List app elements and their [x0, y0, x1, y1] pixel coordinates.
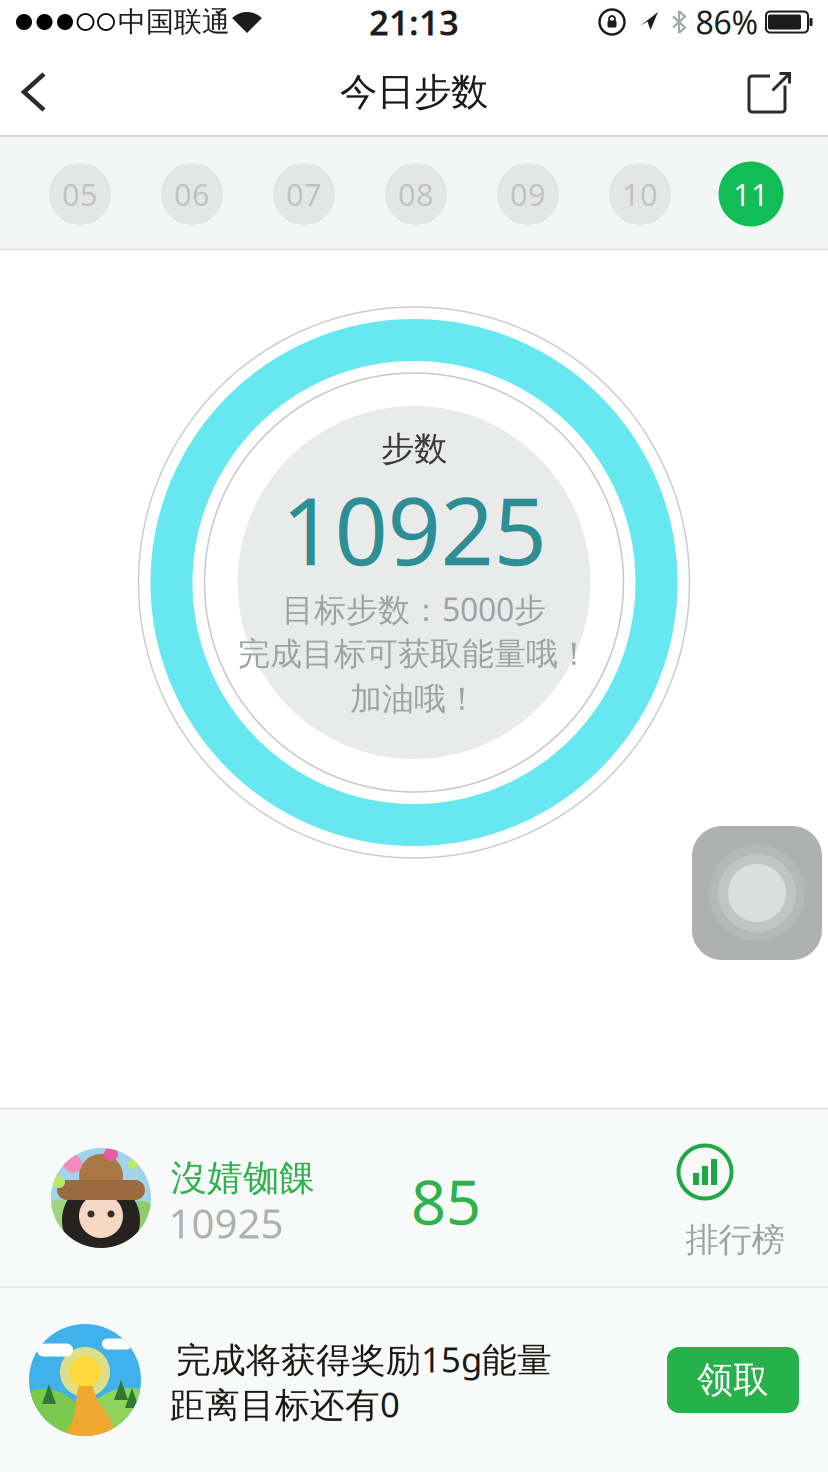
staticText: 步数: [381, 428, 447, 469]
staticText: 中国联通: [118, 5, 230, 39]
staticText: 排行榜: [685, 1219, 784, 1260]
staticText: 沒婧铷餜: [171, 1156, 315, 1200]
staticText: 06: [174, 174, 210, 214]
staticText: 09: [510, 174, 546, 214]
staticText: 距离目标还有0: [170, 1381, 400, 1427]
button[interactable]: Back: [20, 70, 64, 114]
button[interactable]: 09: [497, 163, 559, 225]
button[interactable]: 06: [161, 163, 223, 225]
staticText: 加油哦！: [350, 679, 478, 719]
button[interactable]: 领取: [667, 1347, 799, 1413]
staticText: 05: [62, 174, 98, 214]
staticText: 85: [411, 1160, 481, 1242]
staticText: 目标步数：5000步: [282, 588, 546, 630]
button[interactable]: 10: [609, 163, 671, 225]
staticText: 10: [622, 174, 658, 214]
button[interactable]: 08: [385, 163, 447, 225]
button[interactable]: 11: [718, 161, 783, 226]
button[interactable]: 05: [49, 163, 111, 225]
staticText: 10925: [281, 467, 546, 591]
staticText: 11: [733, 174, 769, 214]
button[interactable]: Share: [745, 68, 793, 116]
staticText: 21:13: [369, 0, 459, 45]
staticText: 08: [398, 174, 434, 214]
button[interactable]: 排行榜: [647, 1128, 797, 1268]
button[interactable]: 07: [273, 163, 335, 225]
staticText: 10925: [168, 1196, 283, 1249]
staticText: 完成将获得奖励15g能量: [176, 1336, 552, 1382]
staticText: 完成目标可获取能量哦！: [238, 634, 590, 674]
button[interactable]: AssistiveTouch: [692, 826, 822, 960]
staticText: 07: [286, 174, 322, 214]
staticText: 领取: [697, 1358, 769, 1402]
staticText: 今日步数: [340, 69, 488, 115]
staticText: 86%: [695, 1, 758, 43]
